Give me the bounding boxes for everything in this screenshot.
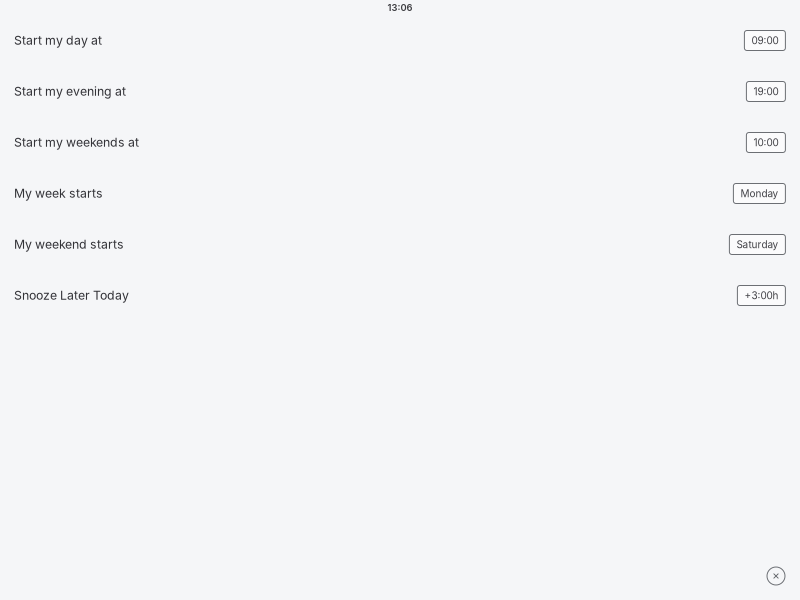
staticText: Snooze Later Today	[14, 288, 129, 303]
staticText: 10:00	[753, 136, 778, 149]
button[interactable]: 10:00	[746, 132, 785, 152]
staticText: Saturday	[736, 238, 778, 251]
button[interactable]: Close	[767, 567, 785, 585]
staticText: Monday	[740, 187, 778, 200]
button[interactable]: 09:00	[744, 30, 785, 50]
staticText: 13:06	[387, 2, 412, 13]
staticText: 09:00	[751, 34, 778, 47]
staticText: 19:00	[753, 85, 778, 98]
staticText: +3:00h	[744, 289, 778, 302]
staticText: My week starts	[14, 186, 103, 201]
button[interactable]: +3:00h	[737, 285, 785, 305]
button[interactable]: Saturday	[729, 234, 785, 254]
staticText: Start my day at	[14, 33, 102, 48]
staticText: My weekend starts	[14, 237, 124, 252]
staticText: Start my weekends at	[14, 135, 139, 150]
button[interactable]: 19:00	[746, 81, 785, 101]
staticText: Start my evening at	[14, 84, 126, 99]
button[interactable]: Monday	[733, 183, 785, 203]
